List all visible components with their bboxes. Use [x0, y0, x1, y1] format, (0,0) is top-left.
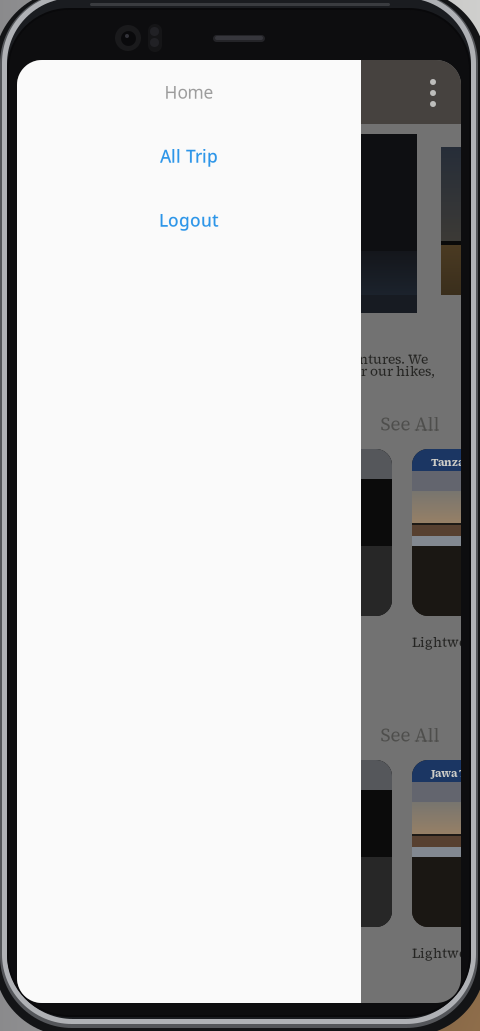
- button[interactable]: All Trip: [17, 124, 361, 188]
- staticText: See All: [380, 411, 439, 437]
- staticText: Lightweight tent: [412, 633, 480, 651]
- staticText: Logout: [159, 208, 219, 231]
- staticText: collect the very best spots for our hike…: [177, 362, 435, 380]
- staticText: Welcome to our hiking adventures. We: [177, 350, 428, 368]
- staticText: Tanzania: [431, 455, 480, 470]
- staticText: Home: [164, 80, 213, 103]
- staticText: All Trip: [160, 144, 218, 167]
- button[interactable]: Logout: [17, 188, 361, 252]
- button[interactable]: See All: [367, 722, 453, 748]
- staticText: See All: [380, 722, 439, 748]
- button[interactable]: More options: [414, 66, 452, 120]
- staticText: Lightweight tent: [412, 944, 480, 962]
- staticText: Jawa Tengah: [431, 766, 480, 781]
- button[interactable]: Home: [17, 60, 361, 124]
- button[interactable]: See All: [367, 411, 453, 437]
